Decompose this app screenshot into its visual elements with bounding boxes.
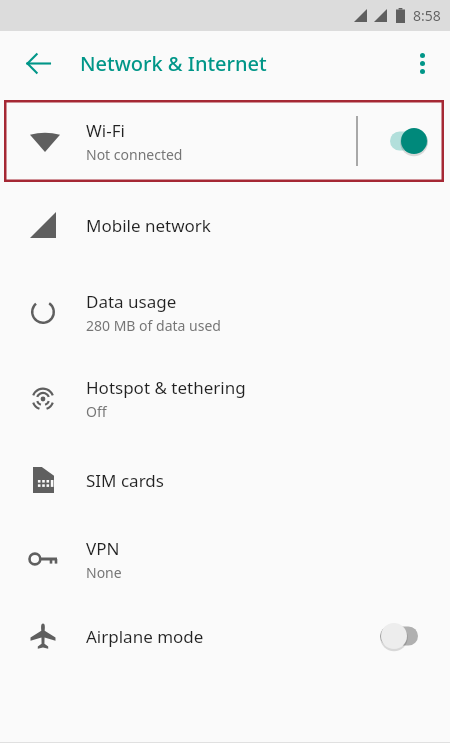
staticText: None bbox=[86, 563, 122, 582]
staticText: Mobile network bbox=[86, 214, 211, 237]
staticText: Airplane mode bbox=[86, 625, 204, 648]
staticText: VPN bbox=[86, 537, 120, 560]
staticText: 280 MB of data used bbox=[86, 316, 221, 335]
staticText: Hotspot & tethering bbox=[86, 376, 246, 399]
staticText: Not connected bbox=[86, 145, 183, 164]
staticText: SIM cards bbox=[86, 469, 164, 492]
staticText: Off bbox=[86, 402, 107, 421]
button[interactable]: SIM cards bbox=[0, 440, 450, 520]
staticText: 8:58 bbox=[413, 6, 441, 25]
button[interactable]: Mobile network bbox=[0, 182, 450, 268]
button[interactable]: VPN bbox=[0, 520, 450, 598]
button[interactable]: Toggle off bbox=[380, 620, 434, 652]
button[interactable]: Data usage bbox=[0, 268, 450, 356]
button[interactable]: More options bbox=[400, 41, 444, 85]
button[interactable]: Wi-Fi bbox=[4, 100, 444, 182]
button[interactable]: Toggle on bbox=[374, 125, 428, 157]
staticText: Wi-Fi bbox=[86, 119, 125, 142]
staticText: Data usage bbox=[86, 290, 177, 313]
button[interactable]: Back bbox=[16, 41, 60, 85]
button[interactable]: Hotspot & tethering bbox=[0, 356, 450, 440]
staticText: Network & Internet bbox=[80, 50, 267, 77]
button[interactable]: Airplane mode bbox=[0, 598, 450, 674]
